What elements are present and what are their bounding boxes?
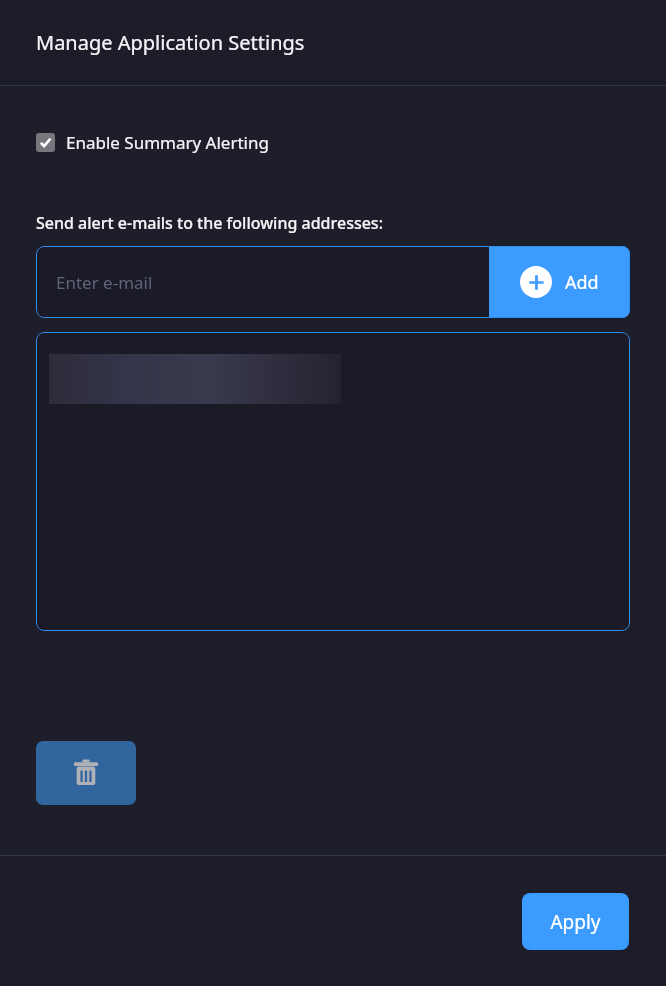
button[interactable]: Enable Summary Alerting — [36, 131, 269, 154]
staticText: Apply — [550, 909, 601, 935]
staticText: Enable Summary Alerting — [66, 131, 269, 154]
staticText: Add — [565, 270, 599, 295]
button[interactable] — [49, 354, 341, 404]
staticText: Send alert e-mails to the following addr… — [36, 212, 383, 234]
button[interactable]: Add — [489, 246, 630, 318]
button[interactable]: Enter e-mail — [36, 246, 489, 318]
button[interactable]: Delete selected e-mail address — [36, 741, 136, 805]
button[interactable]: Apply — [522, 893, 629, 950]
staticText: Enter e-mail — [56, 271, 153, 294]
staticText: Manage Application Settings — [36, 29, 305, 56]
